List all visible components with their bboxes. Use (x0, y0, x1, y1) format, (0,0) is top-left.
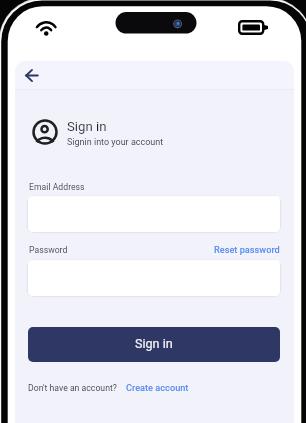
staticText: Password (29, 245, 68, 255)
button[interactable]: Sign in (28, 327, 280, 362)
button[interactable]: Reset password (214, 244, 280, 255)
staticText: Sign in (67, 119, 107, 134)
button[interactable]: Create account (126, 382, 189, 393)
staticText: Signin into your account (67, 137, 164, 148)
staticText: Don't have an account? (28, 383, 117, 393)
staticText: Reset password (214, 244, 280, 255)
button[interactable]: Back (18, 61, 46, 89)
staticText: Email Address (29, 182, 85, 192)
staticText: Sign in (135, 336, 173, 351)
